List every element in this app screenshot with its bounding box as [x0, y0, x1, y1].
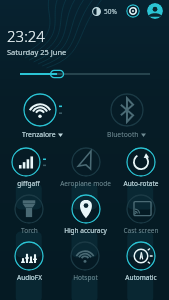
staticText: Bluetooth	[107, 130, 139, 139]
staticText: Auto-rotate	[123, 179, 159, 188]
staticText: Automatic	[125, 273, 157, 282]
staticText: Hotspot	[73, 273, 98, 282]
button[interactable]: AudioFX	[14, 241, 44, 271]
staticText: Torch	[21, 226, 38, 235]
button[interactable]: Cast screen	[126, 194, 156, 224]
staticText: Trenzalore	[22, 130, 56, 139]
button[interactable]: User profile	[147, 3, 163, 19]
button[interactable]: High accuracy	[71, 194, 101, 224]
button[interactable]: Torch	[14, 194, 44, 224]
button[interactable]: giffgaff	[11, 147, 41, 177]
button[interactable]: Auto-rotate	[126, 147, 156, 177]
button[interactable]: Trenzalore	[23, 93, 57, 127]
button[interactable]: Settings	[126, 4, 140, 18]
staticText: 50%	[104, 7, 117, 16]
staticText: 23:24	[7, 26, 45, 46]
staticText: giffgaff	[17, 179, 40, 188]
button[interactable]: Bluetooth	[110, 93, 144, 127]
button[interactable]: Aeroplane mode	[71, 147, 101, 177]
button[interactable]: Brightness	[0, 67, 169, 81]
staticText: Saturday 25 June	[7, 47, 67, 57]
staticText: AudioFX	[17, 273, 42, 282]
button[interactable]: Hotspot	[70, 241, 100, 271]
button[interactable]: Battery 50 percent	[90, 5, 119, 18]
button[interactable]: Automatic	[126, 241, 156, 271]
staticText: Cast screen	[123, 226, 159, 235]
staticText: Aeroplane mode	[60, 179, 111, 188]
staticText: High accuracy	[64, 226, 107, 235]
